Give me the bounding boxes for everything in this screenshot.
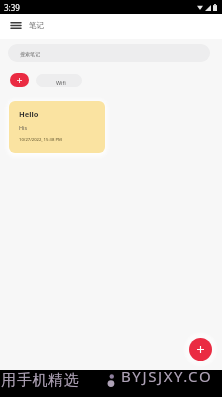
staticText: 搜索笔记 — [20, 51, 40, 57]
staticText: 用手机精选 — [1, 371, 79, 390]
staticText: Hello — [19, 109, 39, 119]
staticText: Wifi — [56, 79, 66, 86]
staticText: 笔记 — [29, 21, 44, 30]
button[interactable]: Wifi — [36, 74, 82, 87]
button[interactable]: 搜索笔记 — [8, 44, 210, 62]
button[interactable]: Add note — [189, 338, 212, 361]
staticText: 3:39 — [4, 2, 20, 13]
button[interactable]: Hello — [9, 101, 105, 153]
button[interactable]: Menu — [0, 14, 26, 39]
button[interactable]: Add category — [10, 73, 29, 87]
staticText: His — [19, 124, 28, 131]
staticText: BYJSJXY.CO — [121, 366, 213, 386]
staticText: 10/27/2022, 15:38 PM — [19, 137, 62, 143]
